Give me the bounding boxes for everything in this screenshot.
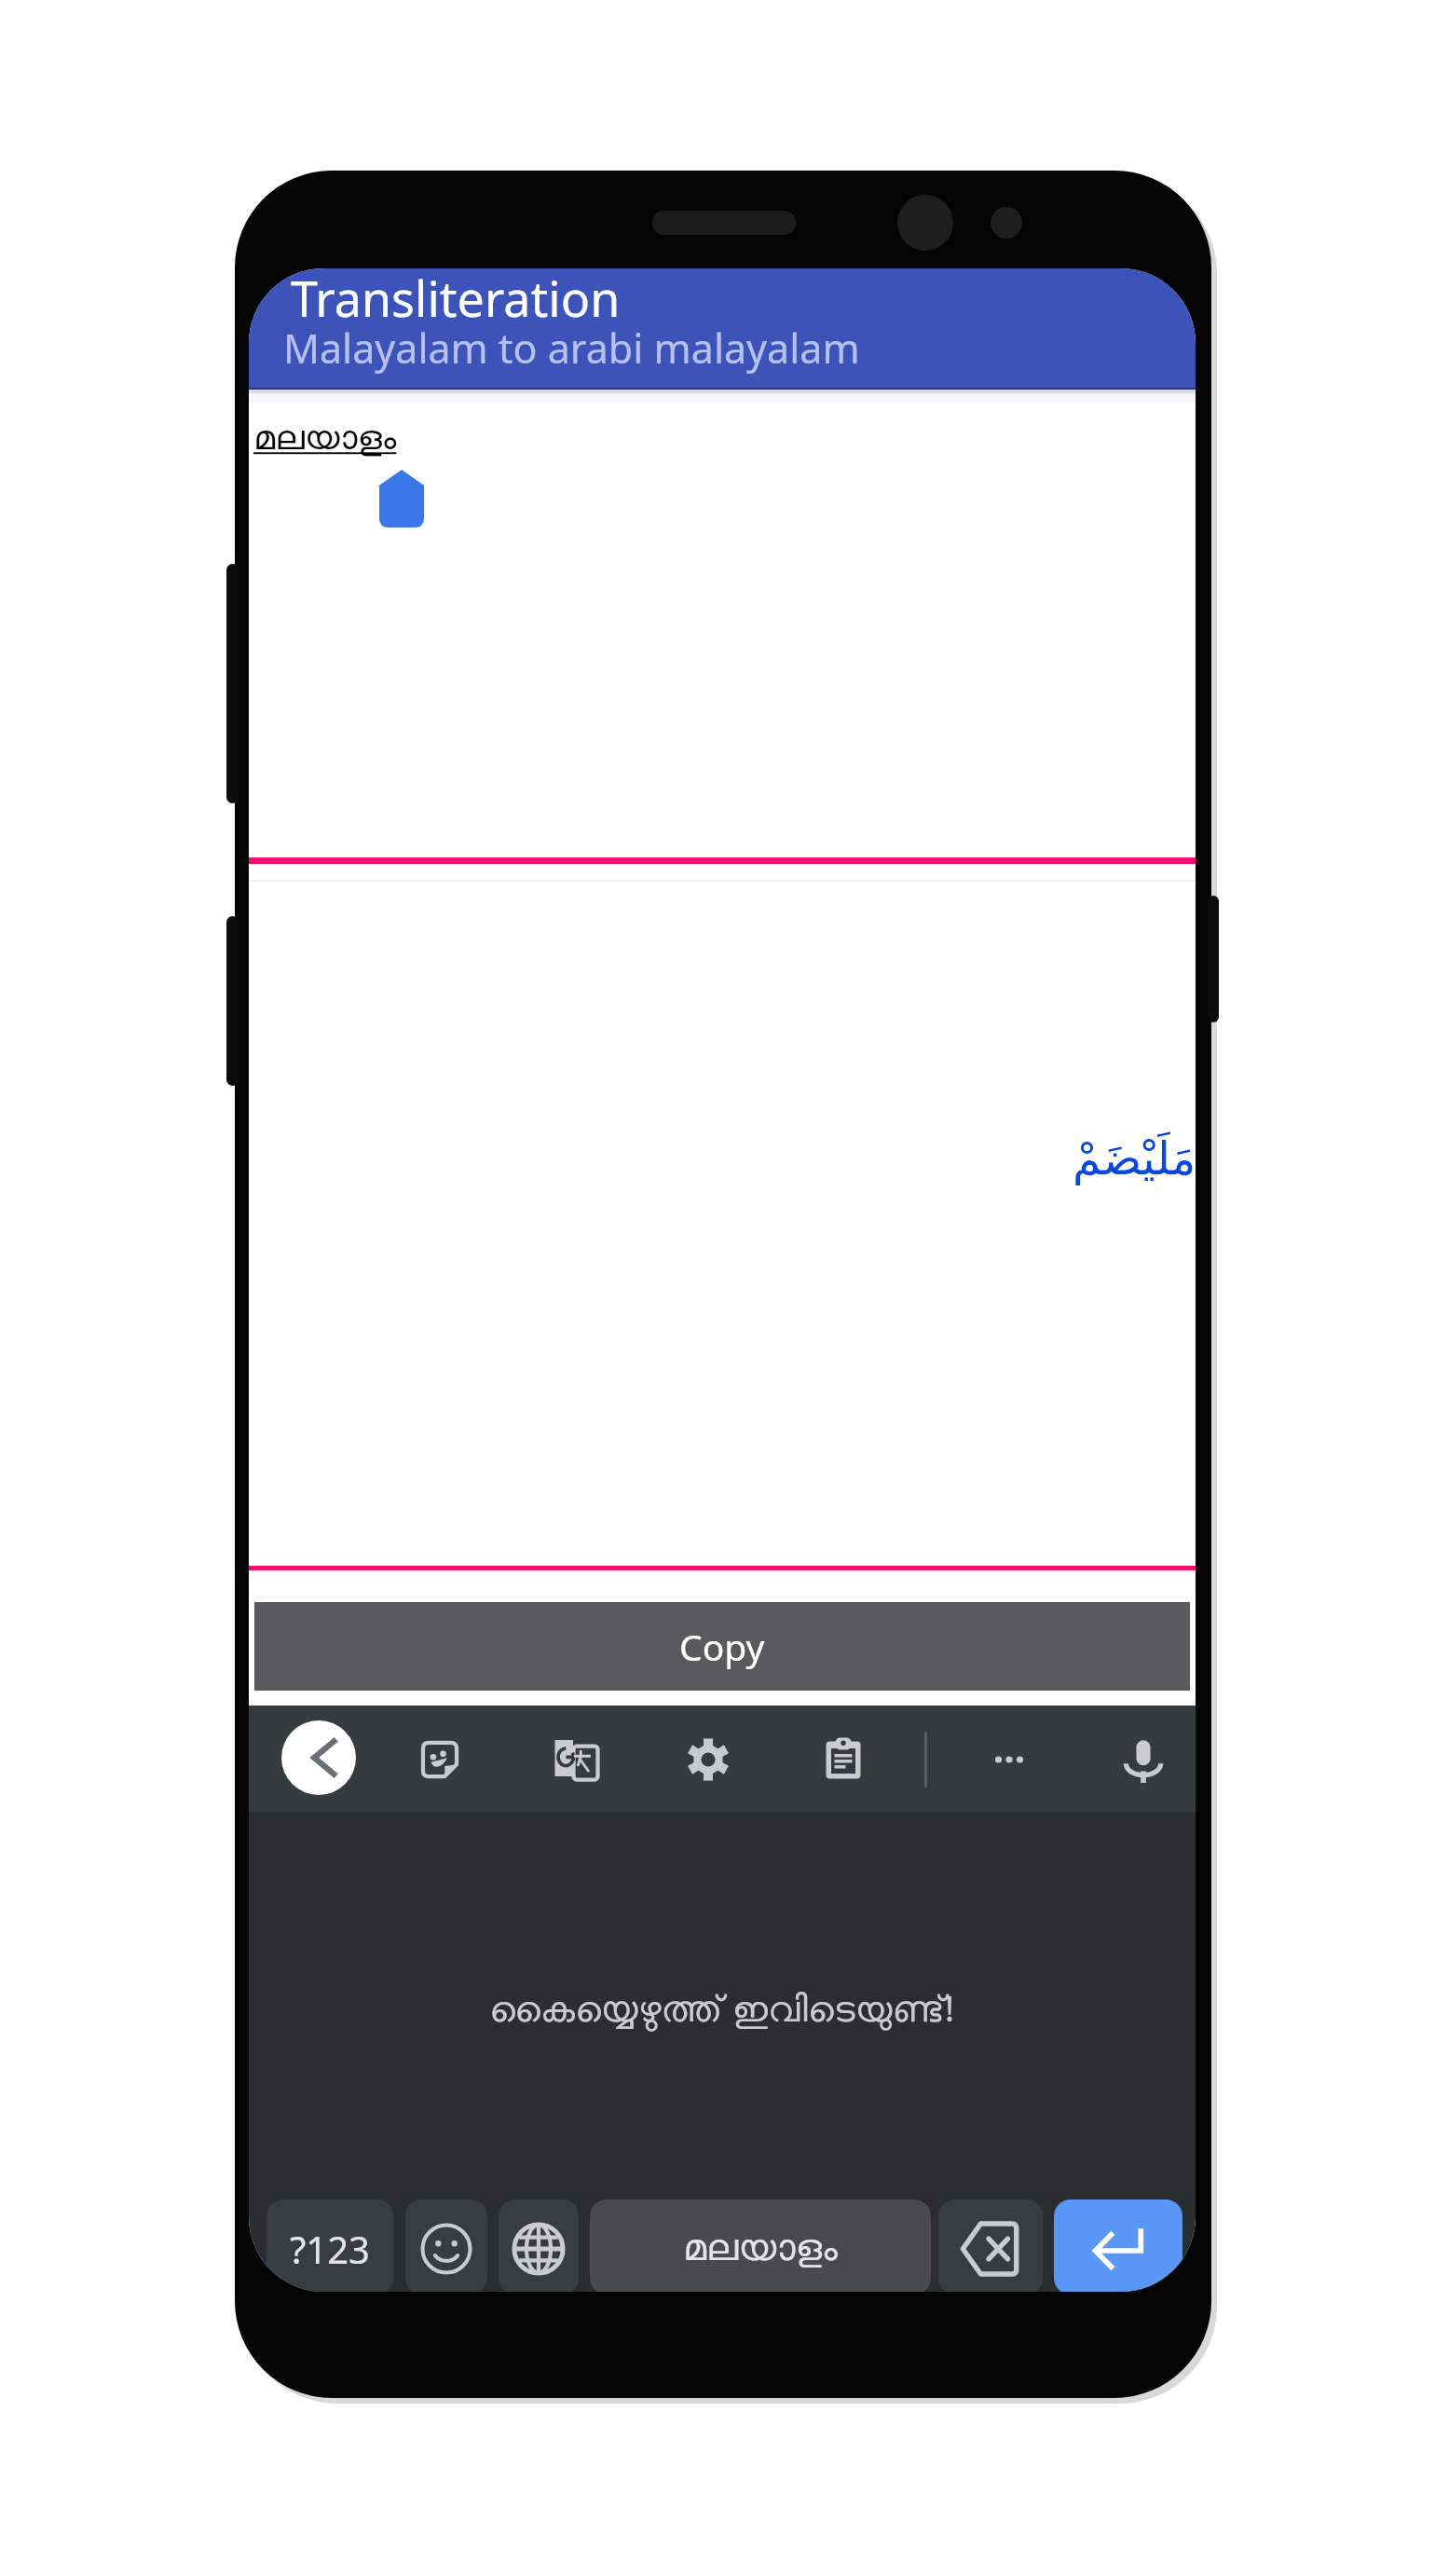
- button[interactable]: ?123: [267, 2199, 393, 2292]
- staticText: Malayalam to arabi malayalam: [283, 321, 860, 376]
- staticText: മലയാളം: [683, 2230, 838, 2268]
- button[interactable]: Emoji: [405, 2199, 487, 2292]
- staticText: Transliteration: [291, 268, 621, 331]
- staticText: مَلَيْضَمْ: [1073, 1132, 1196, 1185]
- button[interactable]: Close keyboard: [281, 1720, 356, 1795]
- staticText: Copy: [679, 1622, 765, 1671]
- button[interactable]: Voice input: [1098, 1714, 1189, 1805]
- button[interactable]: Translate: [530, 1714, 622, 1805]
- button[interactable]: Enter: [1054, 2199, 1182, 2292]
- staticText: മലയാളം: [253, 421, 397, 456]
- button[interactable]: Stickers: [394, 1714, 485, 1805]
- button[interactable]: Copy: [254, 1602, 1190, 1691]
- staticText: കൈയ്യെഴുത്ത് ഇവിടെയുണ്ട്!: [489, 1982, 955, 2032]
- button[interactable]: Settings: [663, 1714, 754, 1805]
- button[interactable]: Change language: [499, 2199, 579, 2292]
- button[interactable]: More options: [964, 1714, 1055, 1805]
- staticText: ?123: [290, 2224, 370, 2274]
- button[interactable]: Backspace: [938, 2199, 1043, 2292]
- button[interactable]: Clipboard: [798, 1713, 889, 1804]
- button[interactable]: മലയാളം: [590, 2199, 931, 2292]
